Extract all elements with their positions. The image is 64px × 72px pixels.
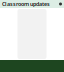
- staticText: Classroom updates: [2, 0, 50, 8]
